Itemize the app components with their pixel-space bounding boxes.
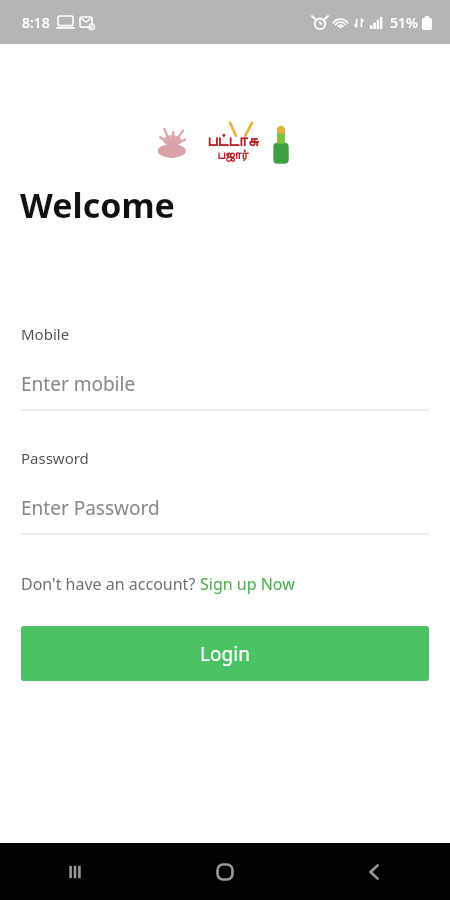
button[interactable]: Mobile xyxy=(21,324,429,411)
staticText: 8:18 xyxy=(22,13,50,32)
staticText: Enter mobile xyxy=(21,371,136,397)
staticText: Login xyxy=(200,641,250,667)
staticText: Enter Password xyxy=(21,495,160,521)
button[interactable]: Home xyxy=(150,843,300,900)
button[interactable]: Login xyxy=(21,626,429,681)
staticText: Don't have an account? xyxy=(21,573,200,595)
button[interactable]: Sign up Now xyxy=(200,573,295,595)
staticText: பஜார் xyxy=(217,149,249,162)
staticText: 51% xyxy=(390,13,418,32)
button[interactable]: Recent apps xyxy=(0,843,150,900)
button[interactable]: Password xyxy=(21,448,429,535)
staticText: Mobile xyxy=(21,324,70,344)
staticText: Welcome xyxy=(20,182,175,228)
staticText: Password xyxy=(21,448,89,468)
button[interactable]: Back xyxy=(300,843,450,900)
staticText: பட்டாசு xyxy=(207,132,259,149)
staticText: Sign up Now xyxy=(200,573,295,595)
